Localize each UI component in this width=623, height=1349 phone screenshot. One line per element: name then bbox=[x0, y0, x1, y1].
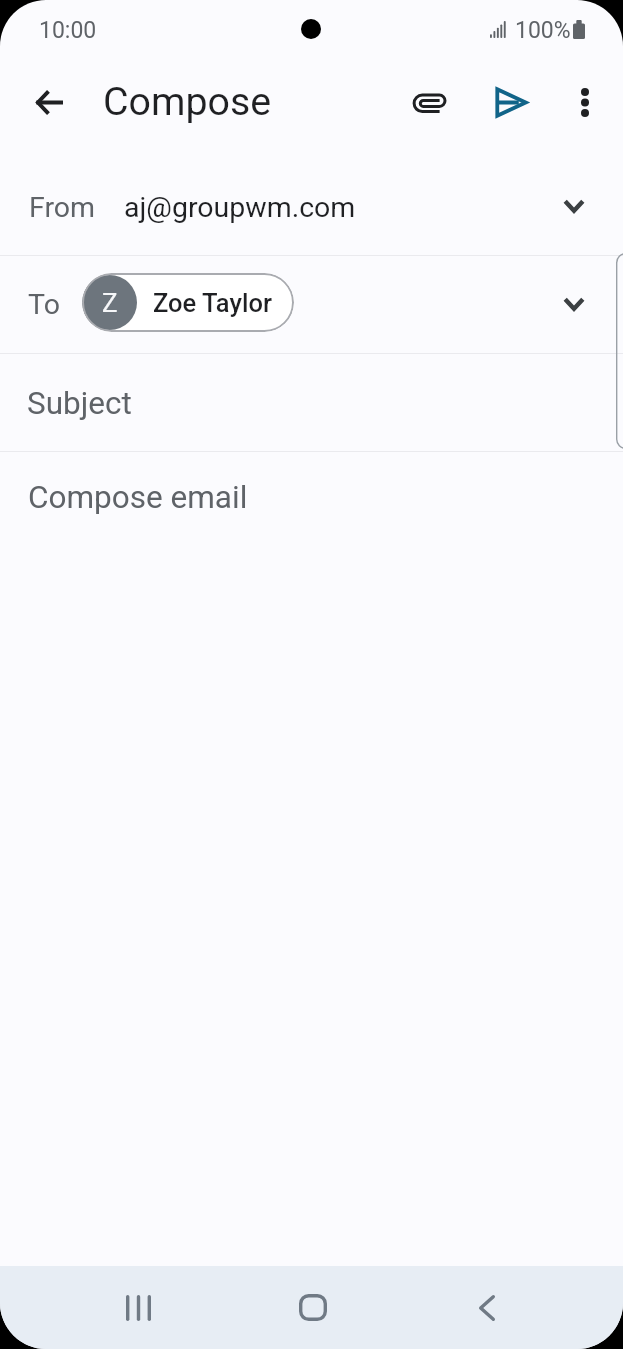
button[interactable]: Subject bbox=[0, 354, 623, 451]
button[interactable]: More options bbox=[551, 68, 619, 136]
button[interactable]: Navigate back bbox=[14, 68, 83, 137]
staticText: From bbox=[29, 191, 96, 224]
button[interactable]: Home bbox=[269, 1266, 357, 1349]
staticText: 10:00 bbox=[39, 17, 97, 44]
button[interactable]: Compose email bbox=[0, 452, 623, 550]
staticText: aj@groupwm.com bbox=[124, 191, 356, 224]
staticText: Compose bbox=[103, 79, 272, 125]
staticText: Compose email bbox=[28, 479, 248, 516]
button[interactable]: From bbox=[0, 148, 623, 255]
button[interactable]: Back bbox=[443, 1266, 531, 1349]
staticText: Z bbox=[102, 288, 118, 318]
button[interactable]: Recent apps bbox=[94, 1266, 182, 1349]
button[interactable]: Show sender options bbox=[540, 172, 608, 240]
staticText: To bbox=[28, 288, 60, 321]
button[interactable]: Show recipient options bbox=[540, 270, 608, 338]
button[interactable]: Z bbox=[82, 273, 294, 332]
button[interactable]: To bbox=[0, 256, 623, 353]
button[interactable]: Send bbox=[477, 68, 545, 136]
staticText: Zoe Taylor bbox=[153, 288, 272, 318]
staticText: Subject bbox=[27, 385, 132, 422]
button[interactable]: Attach file bbox=[396, 68, 464, 136]
staticText: 100% bbox=[515, 17, 571, 44]
